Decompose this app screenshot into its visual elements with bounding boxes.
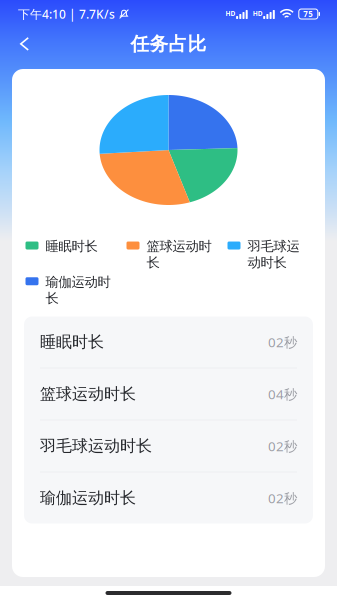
button[interactable]: 羽毛球运动时长	[24, 420, 313, 472]
staticText: 睡眠时长	[40, 332, 104, 352]
staticText: 羽毛球运动时长	[40, 436, 152, 456]
staticText: 02秒	[268, 437, 297, 455]
button[interactable]: Back	[0, 28, 43, 60]
staticText: 瑜伽运动时长	[40, 488, 136, 508]
staticText: 羽毛球运动时长	[247, 238, 299, 271]
staticText: 篮球运动时长	[146, 238, 211, 271]
staticText: 04秒	[268, 385, 297, 403]
staticText: 02秒	[268, 333, 297, 351]
button[interactable]: 睡眠时长	[24, 316, 313, 368]
staticText: 75	[303, 9, 313, 19]
staticText: 任务占比	[130, 32, 206, 55]
staticText: HD	[226, 9, 236, 18]
button[interactable]: 瑜伽运动时长	[24, 472, 313, 523]
staticText: 篮球运动时长	[40, 384, 136, 404]
staticText: 瑜伽运动时长	[45, 274, 110, 307]
staticText: 睡眠时长	[45, 238, 97, 254]
staticText: 下午4:10 | 7.7K/s	[18, 6, 115, 22]
staticText: 02秒	[268, 489, 297, 507]
staticText: HD	[253, 9, 263, 18]
button[interactable]: 篮球运动时长	[24, 368, 313, 420]
